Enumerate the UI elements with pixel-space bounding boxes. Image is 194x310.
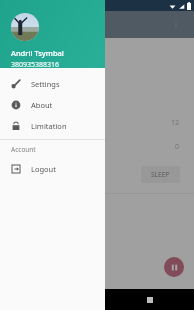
button[interactable]: Limitation <box>0 115 105 136</box>
staticText: 0 <box>175 142 180 152</box>
button[interactable]: Home <box>88 291 106 309</box>
button[interactable]: Pause <box>164 257 184 277</box>
staticText: rounded <box>8 78 37 88</box>
staticText: Logout <box>31 164 56 174</box>
staticText: 12 <box>171 118 180 128</box>
staticText: EDIT FINAL <box>8 46 46 56</box>
button[interactable]: Settings <box>0 73 105 94</box>
staticText: 380935388316 <box>11 60 60 68</box>
staticText: Andrii Tsymbal <box>11 48 64 58</box>
staticText: Limitation <box>31 121 67 131</box>
button[interactable]: Logout <box>0 158 105 179</box>
staticText: SLEEP <box>151 170 170 179</box>
staticText: About <box>31 100 53 110</box>
staticText: Settings <box>31 79 60 89</box>
staticText: Account <box>11 145 36 154</box>
button[interactable]: Recent apps <box>141 291 159 309</box>
button[interactable]: About <box>0 94 105 115</box>
button[interactable]: Profile photo <box>11 13 39 41</box>
button[interactable]: SLEEP <box>141 166 180 183</box>
